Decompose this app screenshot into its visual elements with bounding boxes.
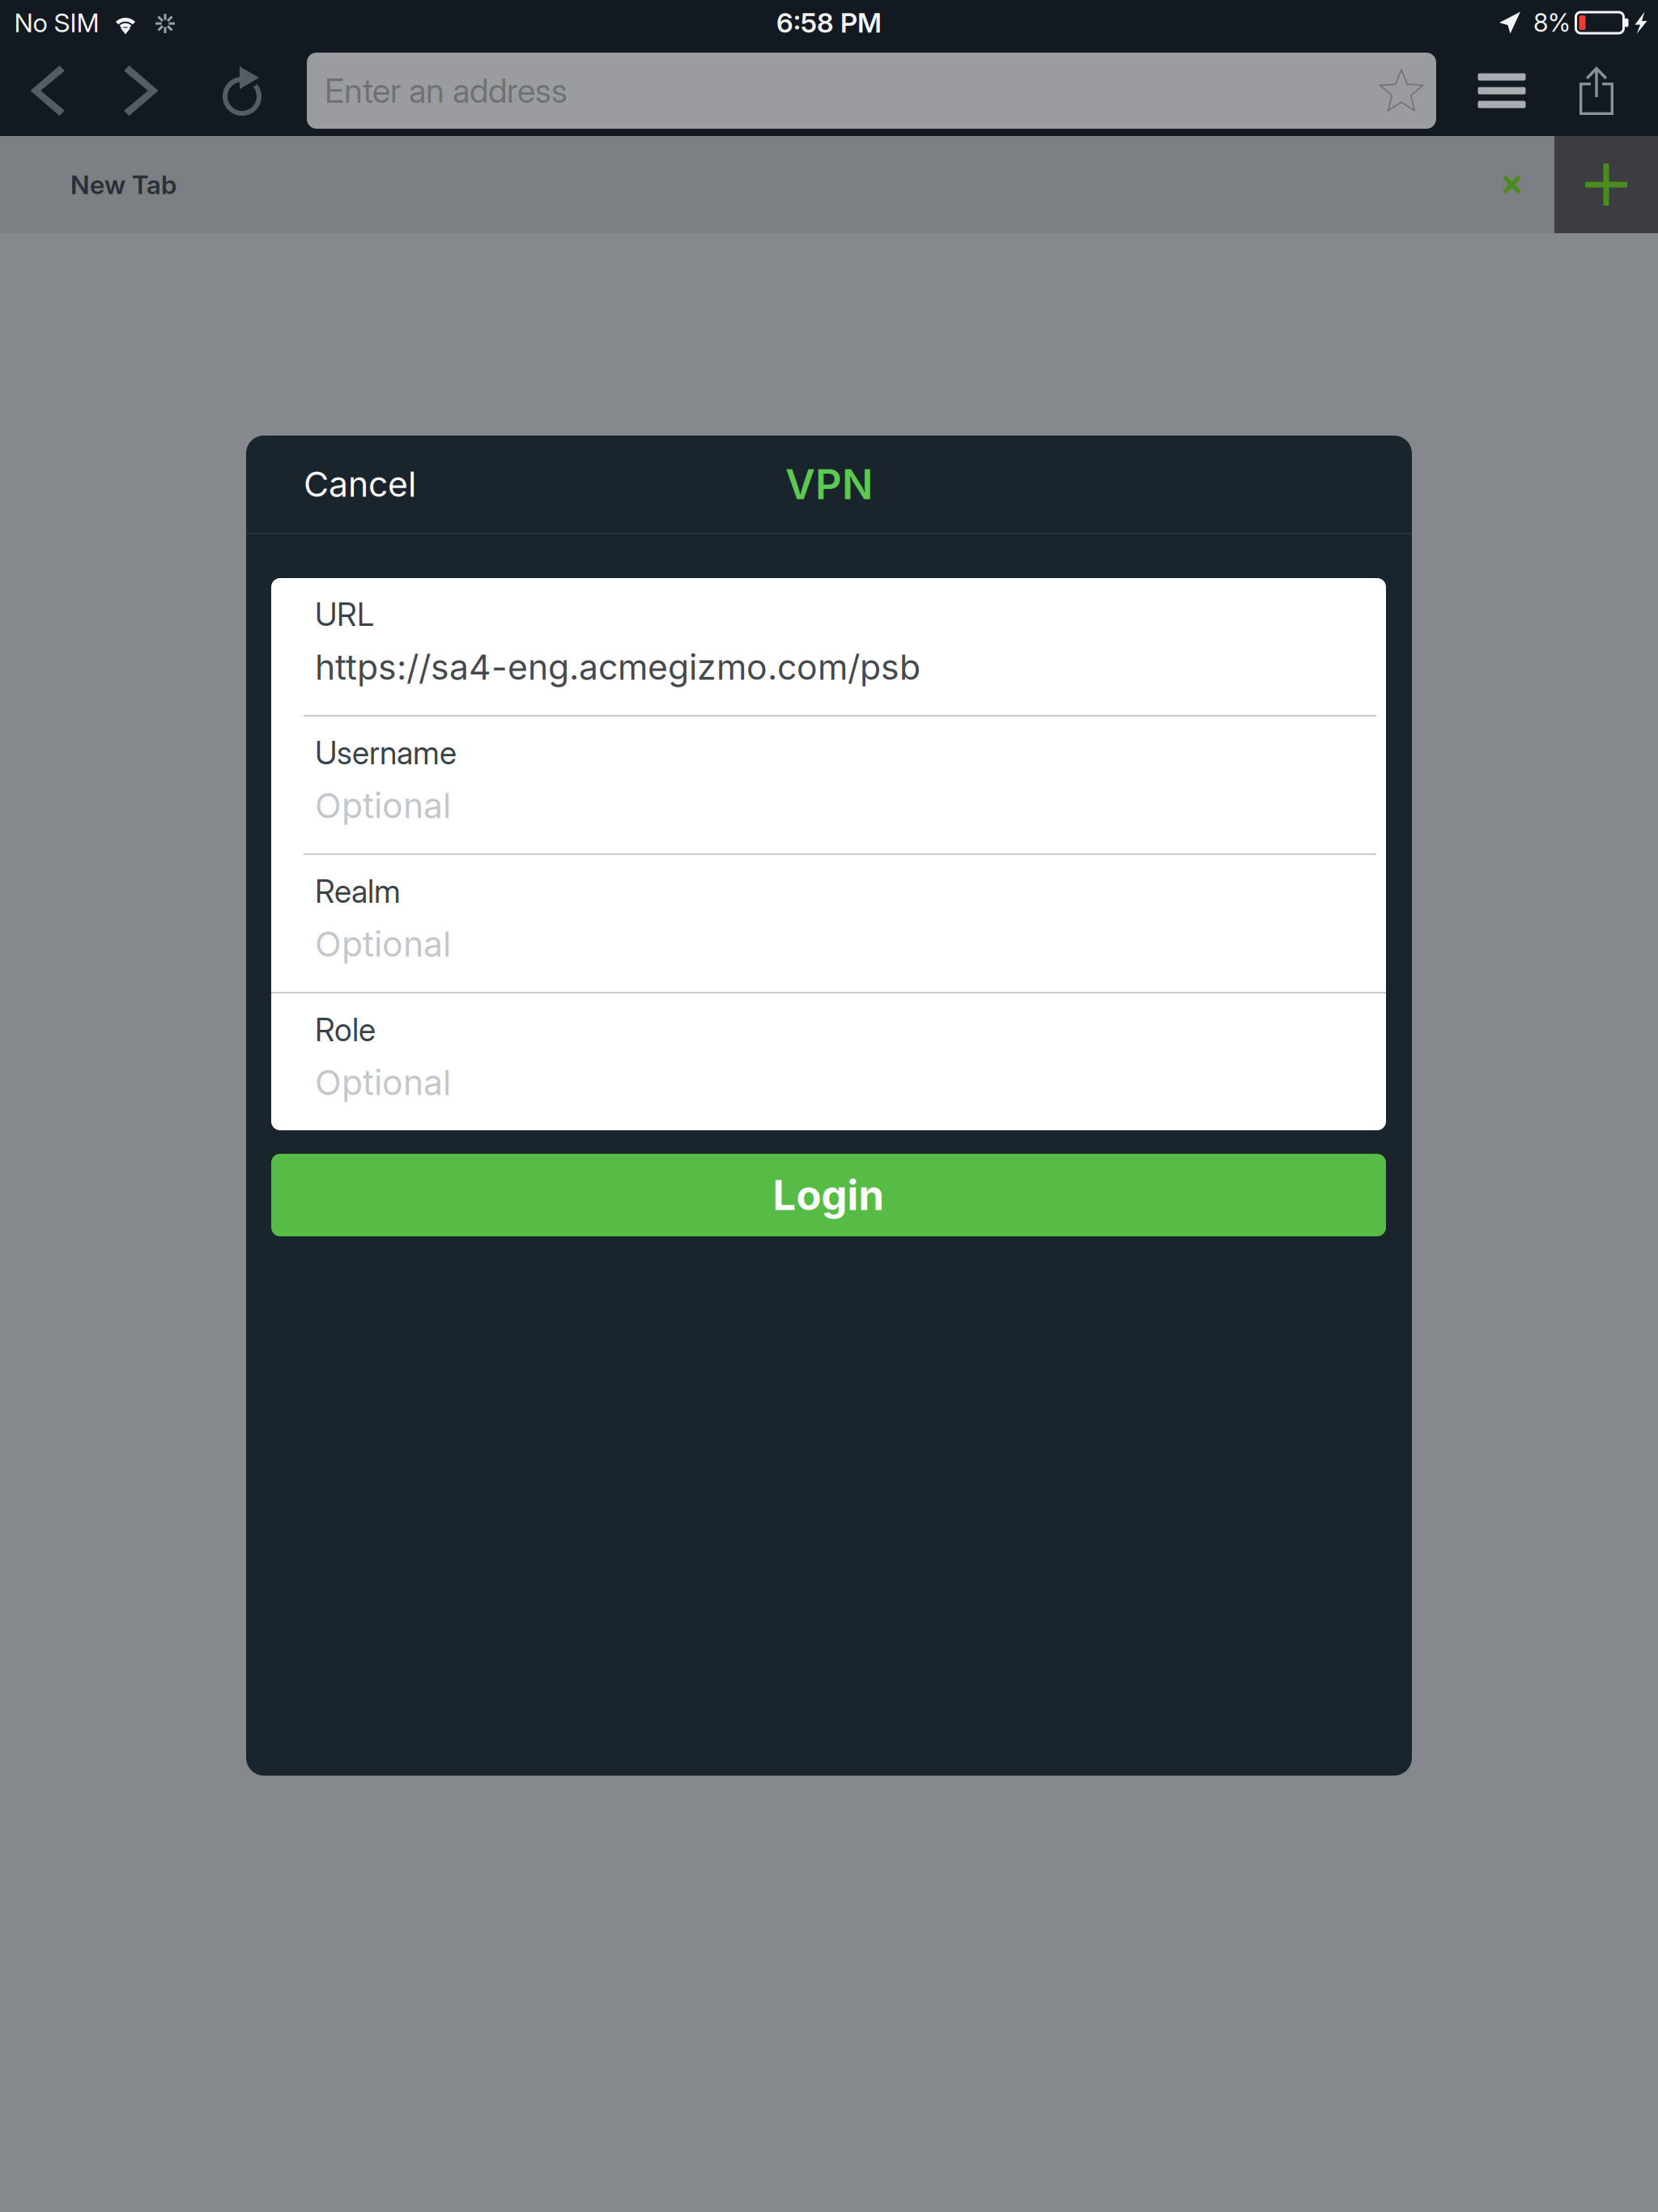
button[interactable]: Forward [100,45,194,136]
staticText: Optional [315,923,451,965]
staticText: https://sa4-eng.acmegizmo.com/psb [315,646,920,688]
button[interactable]: New Tab [1554,136,1658,233]
staticText: Role [315,1011,376,1049]
button[interactable]: Enter an address [307,53,1436,129]
staticText: Enter an address [325,70,568,111]
staticText: Login [773,1170,884,1220]
button[interactable]: Cancel [291,450,429,518]
button[interactable]: Login [271,1154,1386,1236]
staticText: 6:58 PM [776,6,882,39]
staticText: Username [315,734,457,772]
staticText: VPN [785,459,873,509]
button[interactable]: Back [2,45,96,136]
button[interactable]: New Tab [0,136,1554,233]
staticText: Optional [315,785,451,827]
staticText: Cancel [304,463,416,505]
staticText: Realm [315,872,401,910]
button[interactable]: Menu [1460,45,1544,136]
staticText: New Tab [70,169,176,200]
staticText: URL [315,596,374,633]
button[interactable]: Share [1554,45,1639,136]
staticText: Optional [315,1062,451,1103]
button[interactable]: Reload [196,45,287,136]
staticText: 8% [1533,8,1571,38]
staticText: No SIM [14,7,99,38]
